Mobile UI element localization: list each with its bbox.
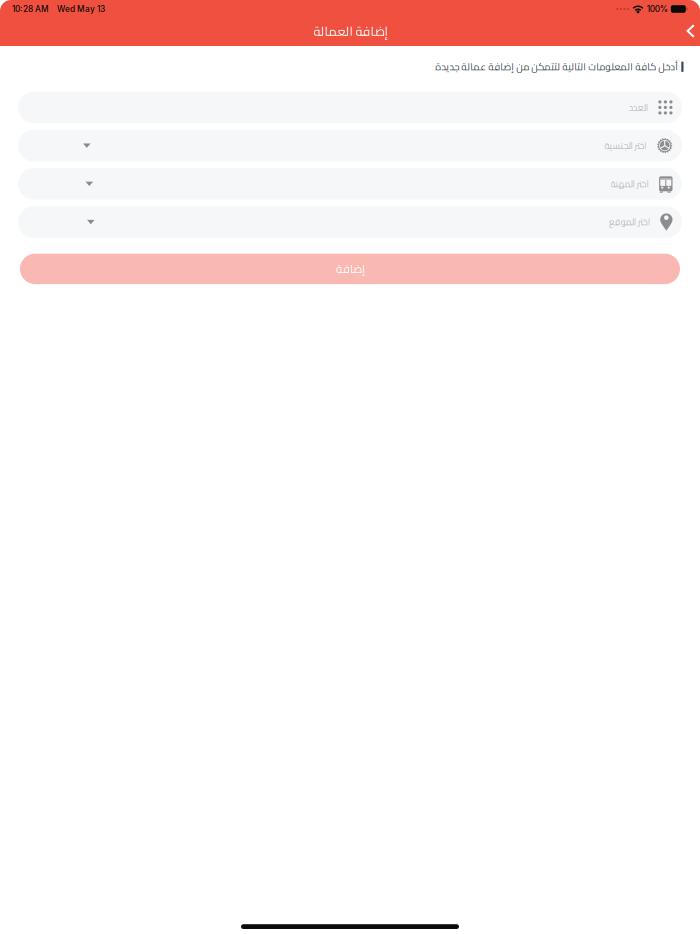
staticText: أدخل كافة المعلومات التالية لتتمكن من إض…	[435, 58, 678, 76]
button[interactable]: اختر الموقع	[18, 206, 682, 238]
button[interactable]: اختر المهنة	[18, 168, 682, 200]
button[interactable]: إضافة	[20, 254, 680, 284]
staticText: 100%	[647, 4, 668, 14]
staticText: اختر الجنسية	[604, 137, 646, 154]
staticText: اختر المهنة	[610, 175, 648, 192]
staticText: Wed May 13	[57, 4, 105, 14]
staticText: العدد	[628, 99, 647, 116]
staticText: إضافة العمالة	[313, 19, 387, 43]
staticText: إضافة	[335, 258, 364, 279]
staticText: اختر الموقع	[608, 213, 649, 230]
button[interactable]: العدد	[18, 92, 682, 123]
button[interactable]: اختر الجنسية	[18, 130, 682, 161]
button[interactable]: Back	[678, 20, 700, 42]
staticText: 10:28 AM	[12, 4, 49, 14]
